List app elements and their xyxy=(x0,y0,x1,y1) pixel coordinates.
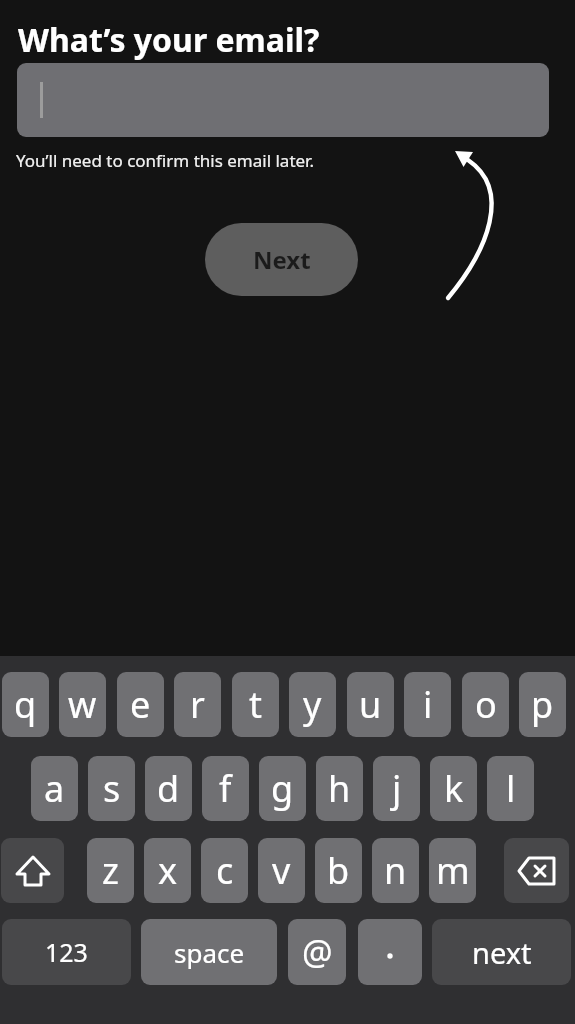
button[interactable] xyxy=(504,838,569,903)
button[interactable]: h xyxy=(316,756,363,821)
button[interactable]: q xyxy=(2,672,49,737)
staticText: q xyxy=(14,680,37,729)
button[interactable]: x xyxy=(144,838,191,903)
staticText: p xyxy=(531,680,554,729)
button[interactable]: y xyxy=(289,672,336,737)
button[interactable]: l xyxy=(487,756,534,821)
button[interactable]: a xyxy=(31,756,78,821)
button[interactable]: s xyxy=(88,756,135,821)
staticText: e xyxy=(130,680,151,729)
button[interactable]: w xyxy=(59,672,106,737)
staticText: space xyxy=(174,935,245,970)
button[interactable]: r xyxy=(174,672,221,737)
button[interactable]: t xyxy=(232,672,279,737)
staticText: next xyxy=(472,933,532,972)
button[interactable]: next xyxy=(432,919,571,985)
button[interactable]: k xyxy=(430,756,477,821)
staticText: w xyxy=(68,680,97,729)
button[interactable] xyxy=(17,63,549,137)
button[interactable]: d xyxy=(145,756,192,821)
button[interactable]: o xyxy=(462,672,509,737)
staticText: x xyxy=(158,846,178,895)
staticText: You’ll need to confirm this email later. xyxy=(16,149,314,172)
button[interactable]: space xyxy=(141,919,277,985)
staticText: u xyxy=(359,680,382,729)
staticText: @ xyxy=(302,929,333,975)
staticText: f xyxy=(219,764,232,813)
button[interactable]: Next xyxy=(205,223,358,296)
button[interactable]: c xyxy=(201,838,248,903)
button[interactable]: g xyxy=(259,756,306,821)
staticText: v xyxy=(272,846,291,895)
staticText: 123 xyxy=(45,935,88,969)
button[interactable]: u xyxy=(347,672,394,737)
staticText: s xyxy=(103,764,121,813)
button[interactable]: z xyxy=(87,838,134,903)
staticText: i xyxy=(423,680,433,729)
staticText: k xyxy=(444,764,464,813)
button[interactable]: b xyxy=(315,838,362,903)
staticText: o xyxy=(475,680,497,729)
staticText: c xyxy=(216,846,234,895)
staticText: d xyxy=(157,764,180,813)
staticText: a xyxy=(44,764,65,813)
button[interactable]: 123 xyxy=(2,919,131,985)
staticText: m xyxy=(436,846,470,895)
staticText: r xyxy=(190,680,205,729)
staticText: What’s your email? xyxy=(18,18,320,62)
staticText: n xyxy=(384,846,407,895)
button[interactable]: i xyxy=(404,672,451,737)
button[interactable]: p xyxy=(519,672,566,737)
button[interactable]: m xyxy=(429,838,476,903)
staticText: l xyxy=(506,764,516,813)
staticText: t xyxy=(249,680,262,729)
button[interactable] xyxy=(1,838,64,903)
button[interactable]: v xyxy=(258,838,305,903)
staticText: b xyxy=(327,846,350,895)
button[interactable]: e xyxy=(117,672,164,737)
button[interactable]: n xyxy=(372,838,419,903)
staticText: z xyxy=(102,846,119,895)
button[interactable] xyxy=(358,919,422,985)
button[interactable]: @ xyxy=(288,919,346,985)
button[interactable]: f xyxy=(202,756,249,821)
button[interactable]: j xyxy=(373,756,420,821)
staticText: j xyxy=(392,764,402,813)
staticText: Next xyxy=(253,243,311,276)
staticText: g xyxy=(271,764,294,813)
staticText: y xyxy=(303,680,322,729)
staticText: h xyxy=(328,764,351,813)
